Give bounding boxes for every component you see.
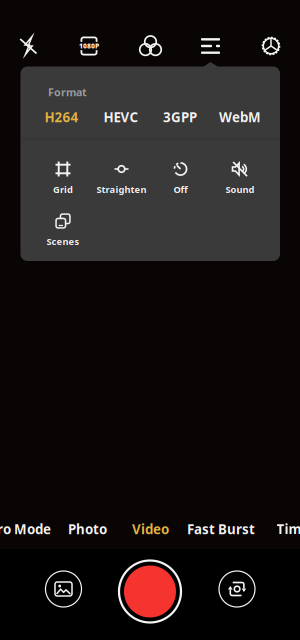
staticText: Grid bbox=[53, 183, 73, 196]
button[interactable]: Video resolution 1080p bbox=[69, 28, 109, 64]
staticText: 1080P bbox=[79, 42, 99, 50]
button[interactable]: Filters bbox=[130, 28, 170, 64]
button[interactable]: Gallery bbox=[39, 565, 87, 613]
button[interactable]: Off bbox=[151, 160, 210, 194]
staticText: 3GPP bbox=[163, 108, 197, 126]
button[interactable]: Grid bbox=[33, 160, 92, 194]
button[interactable]: ro Mode bbox=[0, 515, 59, 543]
staticText: Off bbox=[173, 183, 187, 196]
staticText: Photo bbox=[68, 520, 107, 538]
button[interactable]: Flash off bbox=[9, 28, 49, 64]
button[interactable]: More options bbox=[190, 28, 230, 64]
button[interactable]: Video bbox=[120, 515, 180, 543]
staticText: H264 bbox=[44, 108, 78, 126]
staticText: Tim bbox=[276, 520, 300, 538]
staticText: Fast Burst bbox=[187, 520, 255, 538]
button[interactable]: HEVC bbox=[91, 105, 150, 129]
button[interactable]: Tim bbox=[264, 515, 300, 543]
staticText: Sound bbox=[225, 183, 254, 196]
button[interactable]: Scenes bbox=[33, 212, 92, 246]
button[interactable]: 3GPP bbox=[150, 105, 209, 129]
staticText: Scenes bbox=[46, 235, 79, 248]
button[interactable]: Fast Burst bbox=[176, 515, 266, 543]
button[interactable]: H264 bbox=[32, 105, 91, 129]
staticText: Straighten bbox=[96, 183, 146, 196]
button[interactable]: Switch camera bbox=[213, 565, 261, 613]
button[interactable]: Record bbox=[118, 559, 182, 623]
button[interactable]: WebM bbox=[210, 105, 269, 129]
staticText: Format bbox=[48, 85, 87, 99]
button[interactable]: Sound bbox=[210, 160, 269, 194]
staticText: WebM bbox=[219, 108, 261, 126]
staticText: HEVC bbox=[103, 108, 138, 126]
staticText: ro Mode bbox=[0, 520, 51, 538]
button[interactable]: Straighten bbox=[92, 160, 151, 194]
button[interactable]: Settings bbox=[251, 28, 291, 64]
button[interactable]: Photo bbox=[57, 515, 117, 543]
staticText: Video bbox=[132, 520, 169, 538]
